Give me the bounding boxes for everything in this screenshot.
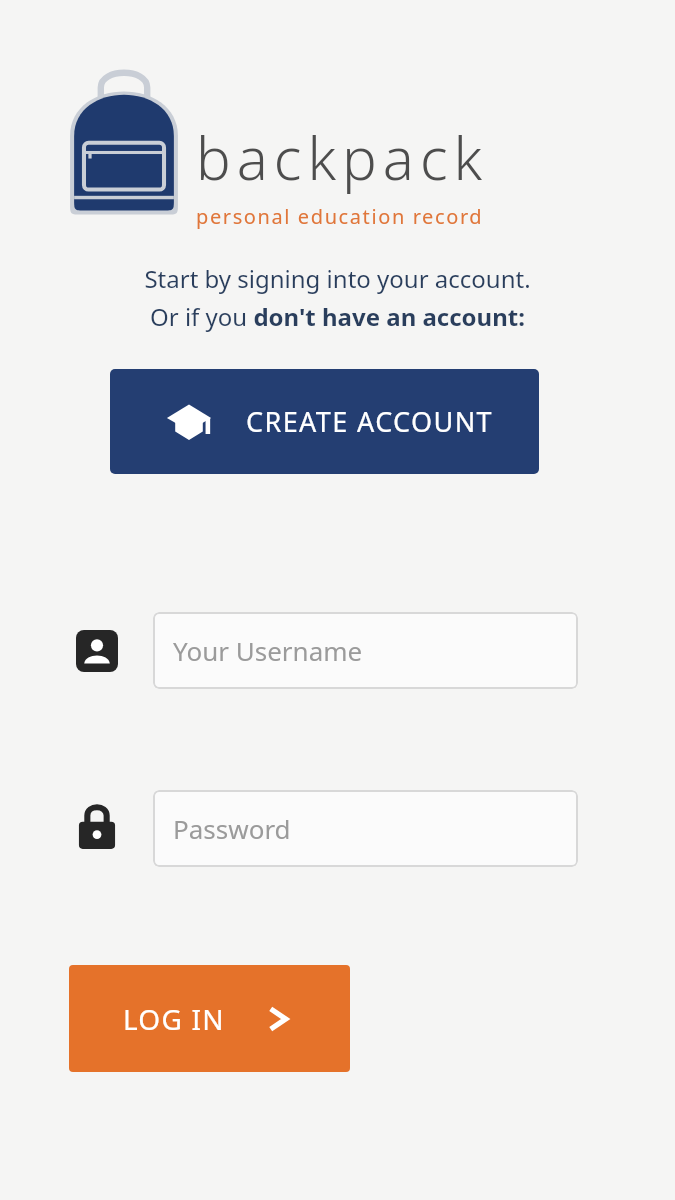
button[interactable]: LOG IN bbox=[69, 965, 350, 1072]
other: Username bbox=[76, 630, 118, 672]
other: Password bbox=[76, 800, 118, 852]
button[interactable]: CREATE ACCOUNT bbox=[110, 369, 539, 474]
staticText: Start by signing into your account. Or i… bbox=[144, 262, 531, 333]
staticText: backpack bbox=[196, 118, 489, 197]
button[interactable]: Password bbox=[153, 790, 578, 867]
staticText: Your Username bbox=[173, 633, 363, 668]
staticText: personal education record bbox=[196, 203, 484, 230]
staticText: LOG IN bbox=[123, 1000, 225, 1038]
staticText: CREATE ACCOUNT bbox=[246, 403, 493, 440]
button[interactable]: Your Username bbox=[153, 612, 578, 689]
staticText: Password bbox=[173, 811, 291, 846]
